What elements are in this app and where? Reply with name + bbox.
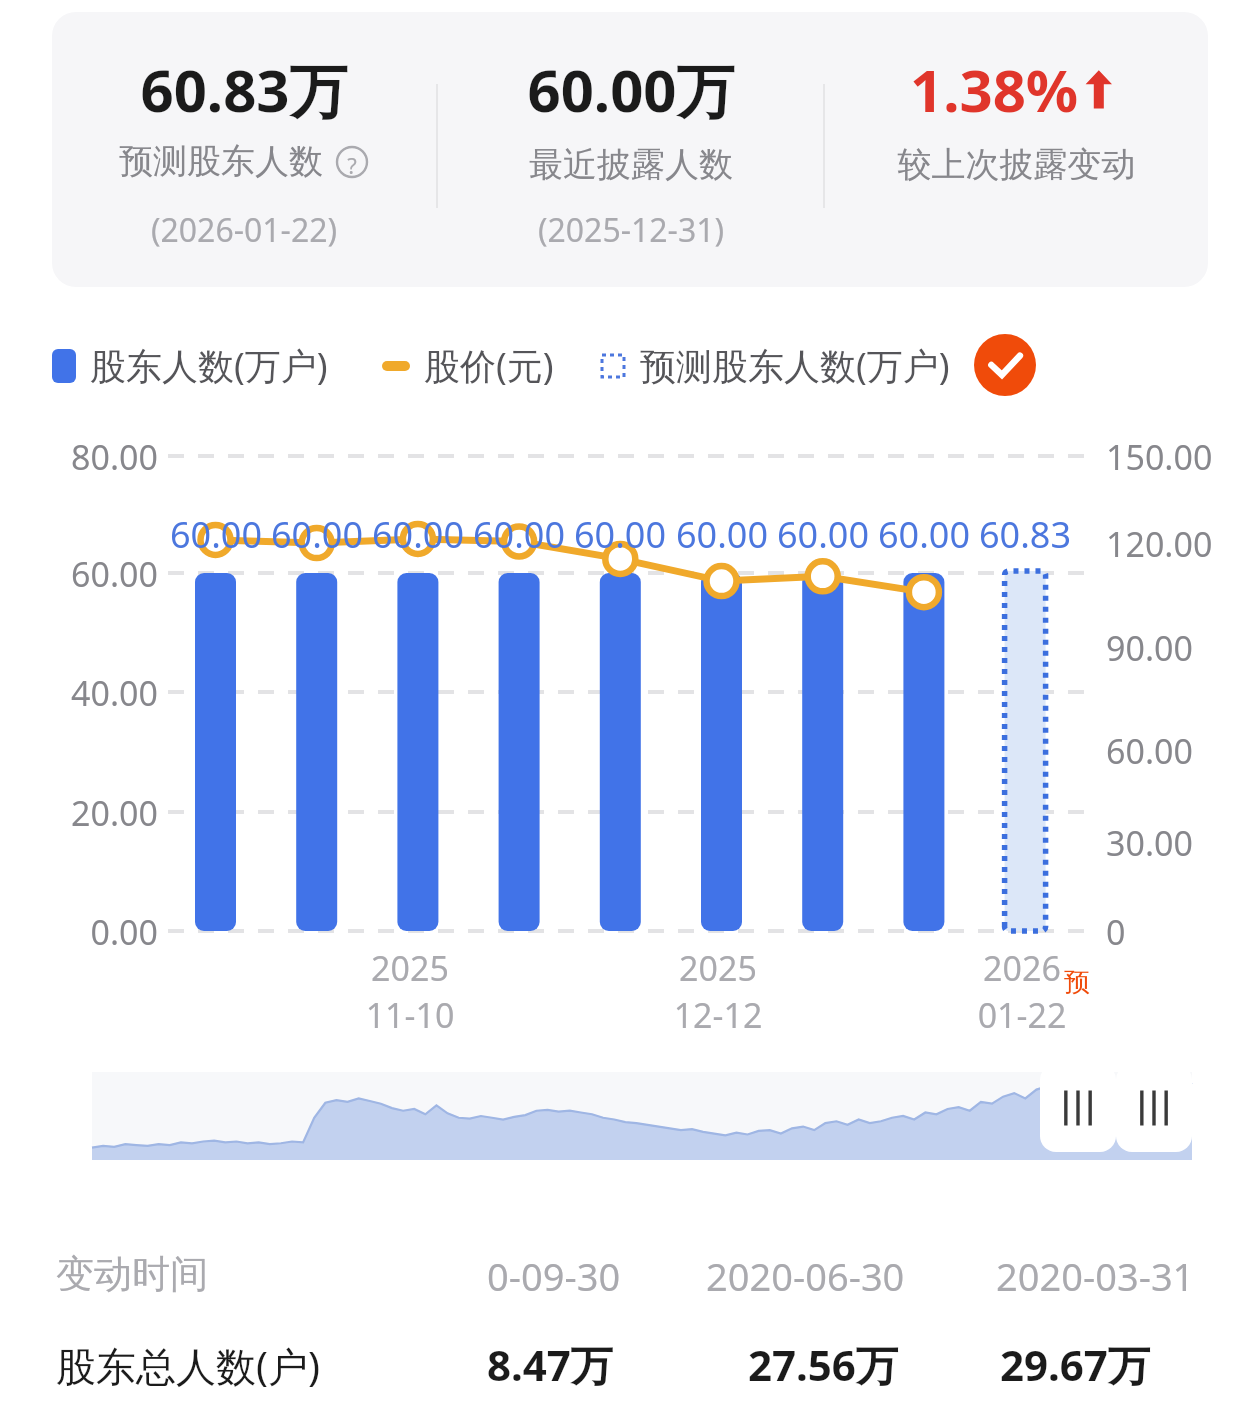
- staticText: 2025: [320, 945, 500, 991]
- button[interactable]: 左侧手柄: [1040, 1064, 1116, 1152]
- staticText: 60.00万: [439, 50, 823, 129]
- staticText: 60.00: [662, 510, 782, 559]
- button[interactable]: 股价(元): [382, 341, 554, 390]
- staticText: 0.00: [58, 909, 158, 955]
- staticText: 60.00: [58, 551, 158, 597]
- staticText: 股东人数(万户): [90, 341, 328, 390]
- staticText: 60.00: [864, 510, 984, 559]
- staticText: 预: [1064, 966, 1090, 999]
- staticText: 60.00: [763, 510, 883, 559]
- button[interactable]: 股东人数(万户): [52, 341, 336, 390]
- staticText: 30.00: [1106, 820, 1193, 866]
- staticText: 60.00: [1106, 728, 1193, 774]
- staticText: 60.00: [257, 510, 377, 559]
- staticText: 90.00: [1106, 625, 1193, 671]
- staticText: 较上次披露变动: [825, 143, 1208, 186]
- staticText: 60.83万: [52, 50, 436, 129]
- staticText: 27.56万: [748, 1336, 898, 1393]
- staticText: 股价(元): [424, 341, 554, 390]
- button[interactable]: 60.83万: [52, 12, 1208, 287]
- staticText: 1.38%: [910, 50, 1079, 129]
- staticText: 0-09-30: [487, 1250, 621, 1302]
- staticText: 150.00: [1106, 434, 1213, 480]
- staticText: 60.00: [459, 510, 579, 559]
- staticText: 40.00: [58, 670, 158, 716]
- staticText: 2025: [628, 945, 808, 991]
- button[interactable]: 左侧手柄: [92, 1072, 1192, 1160]
- button[interactable]: 说明: [335, 145, 369, 179]
- button[interactable]: 预测股东人数(万户): [600, 341, 950, 390]
- staticText: 80.00: [58, 434, 158, 480]
- staticText: 60.00: [156, 510, 276, 559]
- staticText: 最近披露人数: [439, 143, 823, 186]
- staticText: 11-10: [320, 992, 500, 1038]
- button[interactable]: 右侧手柄: [1116, 1064, 1192, 1152]
- button[interactable]: 已选择: [974, 334, 1036, 396]
- staticText: 变动时间: [56, 1250, 208, 1298]
- staticText: 8.47万: [487, 1336, 613, 1393]
- staticText: 2026: [932, 945, 1112, 991]
- staticText: 12-12: [628, 992, 808, 1038]
- staticText: 2020-03-31: [996, 1250, 1195, 1302]
- staticText: 预测股东人数: [119, 140, 323, 183]
- staticText: 60.83: [965, 510, 1085, 559]
- staticText: 60.00: [358, 510, 478, 559]
- staticText: 股东总人数(户): [56, 1338, 320, 1393]
- staticText: ?: [335, 150, 369, 180]
- staticText: 20.00: [58, 790, 158, 836]
- staticText: 60.00: [560, 510, 680, 559]
- staticText: 01-22: [932, 992, 1112, 1038]
- staticText: 2020-06-30: [706, 1250, 905, 1302]
- staticText: (2026-01-22): [52, 208, 436, 252]
- staticText: 0: [1106, 909, 1126, 955]
- staticText: 29.67万: [1000, 1336, 1150, 1393]
- staticText: (2025-12-31): [439, 208, 823, 252]
- staticText: 120.00: [1106, 521, 1213, 567]
- staticText: 预测股东人数(万户): [640, 341, 950, 390]
